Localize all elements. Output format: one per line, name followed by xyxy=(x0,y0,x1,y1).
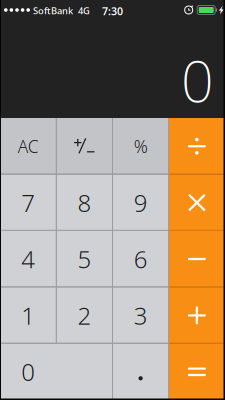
button[interactable]: 8 xyxy=(56,174,112,231)
button[interactable]: 0 xyxy=(0,344,112,400)
button[interactable]: 5 xyxy=(56,231,112,287)
button[interactable]: 7 xyxy=(0,174,56,231)
staticText: 0 xyxy=(21,356,35,388)
staticText: 1 xyxy=(21,299,35,331)
button[interactable]: 9 xyxy=(112,174,169,231)
staticText: 5 xyxy=(77,243,91,275)
staticText: 2 xyxy=(77,299,91,331)
button[interactable]: Multiply xyxy=(169,174,225,231)
button[interactable]: Percent xyxy=(112,118,169,174)
button[interactable]: 1 xyxy=(0,287,56,344)
staticText: 0 xyxy=(181,42,214,118)
staticText: 6 xyxy=(134,243,148,275)
staticText: 7:30 xyxy=(102,4,123,18)
staticText: SoftBank xyxy=(33,4,73,17)
button[interactable]: Add xyxy=(169,287,225,344)
button[interactable]: Subtract xyxy=(169,231,225,287)
button[interactable]: Decimal point xyxy=(112,344,169,400)
staticText: 9 xyxy=(134,187,148,219)
button[interactable]: Divide xyxy=(169,118,225,174)
button[interactable]: Equals xyxy=(169,344,225,400)
button[interactable]: 2 xyxy=(56,287,112,344)
button[interactable]: Plus Minus xyxy=(56,118,112,174)
button[interactable]: All Clear xyxy=(0,118,56,174)
staticText: 4G xyxy=(78,4,90,17)
staticText: 3 xyxy=(134,299,148,331)
button[interactable]: 3 xyxy=(112,287,169,344)
staticText: 7 xyxy=(21,187,35,219)
staticText: 8 xyxy=(77,187,91,219)
button[interactable]: 4 xyxy=(0,231,56,287)
button[interactable]: 6 xyxy=(112,231,169,287)
staticText: % xyxy=(134,135,148,158)
staticText: 4 xyxy=(21,243,35,275)
staticText: AC xyxy=(18,135,39,158)
